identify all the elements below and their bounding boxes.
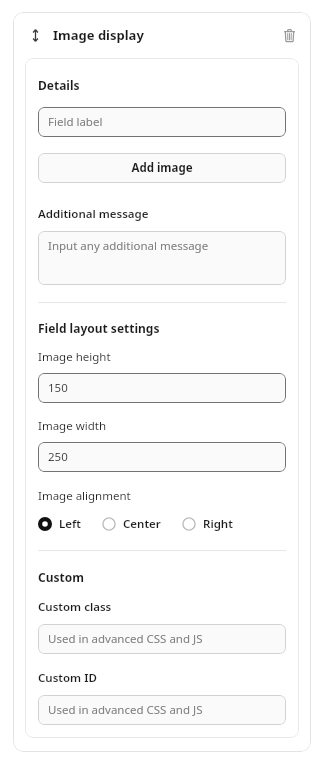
staticText: 150 [48, 380, 68, 396]
button[interactable]: Used in advanced CSS and JS [38, 695, 286, 725]
staticText: Input any additional message [48, 238, 209, 254]
button[interactable]: Center [102, 516, 161, 532]
button[interactable]: Reorder field [25, 25, 45, 45]
staticText: Image height [38, 349, 111, 365]
button[interactable]: Used in advanced CSS and JS [38, 624, 286, 654]
staticText: Additional message [38, 206, 149, 222]
staticText: Used in advanced CSS and JS [48, 702, 203, 718]
button[interactable]: Add image [38, 153, 286, 183]
staticText: Custom class [38, 599, 112, 615]
staticText: Field layout settings [38, 320, 160, 336]
staticText: Left [59, 516, 81, 532]
staticText: Center [123, 516, 161, 532]
button[interactable]: Field label [38, 107, 286, 137]
button[interactable]: Right [182, 516, 233, 532]
button[interactable]: 150 [38, 373, 286, 403]
button[interactable]: Delete field [277, 23, 301, 47]
button[interactable]: Input any additional message [38, 231, 286, 285]
staticText: Used in advanced CSS and JS [48, 631, 203, 647]
staticText: Image display [53, 26, 144, 44]
staticText: Add image [131, 160, 193, 176]
staticText: Custom [38, 569, 84, 585]
staticText: Image alignment [38, 488, 131, 504]
staticText: Field label [48, 114, 103, 130]
staticText: Custom ID [38, 670, 97, 686]
staticText: 250 [48, 449, 68, 465]
button[interactable]: 250 [38, 442, 286, 472]
button[interactable]: Left [38, 516, 81, 532]
staticText: Details [38, 77, 80, 93]
staticText: Image width [38, 418, 106, 434]
staticText: Right [203, 516, 233, 532]
